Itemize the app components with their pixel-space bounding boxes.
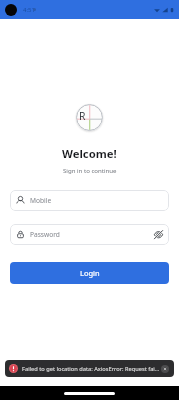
- button[interactable]: Login: [10, 262, 169, 284]
- staticText: R: [79, 109, 86, 123]
- staticText: Login: [80, 268, 100, 278]
- button[interactable]: Show password: [153, 229, 164, 240]
- staticText: Sign in to continue: [63, 166, 117, 174]
- staticText: Failed to get location data: AxiosError:…: [22, 365, 160, 373]
- button[interactable]: Dismiss: [161, 365, 169, 373]
- button[interactable]: Password: [10, 224, 169, 245]
- staticText: 4:51: [23, 6, 35, 14]
- staticText: Password: [30, 230, 60, 239]
- button[interactable]: Mobile: [10, 190, 169, 211]
- staticText: Welcome!: [62, 146, 117, 161]
- staticText: Mobile: [30, 196, 52, 205]
